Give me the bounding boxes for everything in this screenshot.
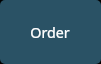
staticText: Order [30,23,70,42]
button[interactable]: Order [0,0,101,64]
